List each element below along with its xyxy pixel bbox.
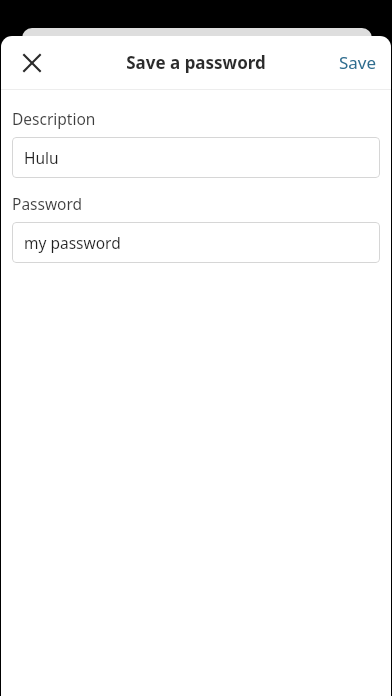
staticText: Password — [12, 193, 83, 214]
button[interactable]: my password — [12, 222, 380, 263]
staticText: Hulu — [24, 147, 59, 168]
staticText: my password — [24, 232, 121, 253]
staticText: Save — [339, 51, 377, 74]
button[interactable]: Hulu — [12, 137, 380, 178]
staticText: Description — [12, 108, 96, 129]
button[interactable]: Close — [13, 44, 51, 82]
staticText: Save a password — [1, 51, 391, 74]
button[interactable]: Save — [325, 41, 391, 84]
